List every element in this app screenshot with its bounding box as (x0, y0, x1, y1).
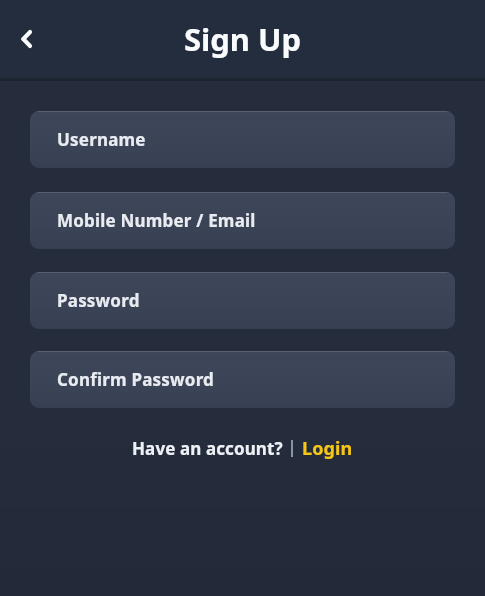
staticText: Username (57, 128, 146, 151)
button[interactable]: Login (302, 436, 353, 461)
staticText: Confirm Password (57, 368, 215, 391)
staticText: Sign Up (0, 18, 485, 60)
staticText: Login (302, 436, 353, 461)
staticText: Mobile Number / Email (57, 209, 256, 232)
staticText: Have an account? (132, 437, 283, 460)
staticText: Password (57, 289, 140, 312)
button[interactable]: Username (30, 111, 455, 168)
button[interactable]: Mobile Number / Email (30, 192, 455, 249)
button[interactable]: Password (30, 272, 455, 329)
button[interactable]: Back (4, 13, 52, 65)
button[interactable]: Confirm Password (30, 351, 455, 408)
